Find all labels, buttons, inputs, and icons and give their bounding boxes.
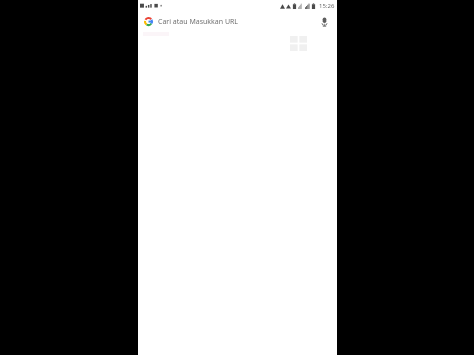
other: Shortcuts bbox=[290, 36, 307, 51]
staticText: Cari atau Masukkan URL bbox=[158, 17, 239, 27]
staticText: 15:26 bbox=[319, 2, 335, 10]
button[interactable]: Cari atau Masukkan URL bbox=[138, 11, 337, 32]
button[interactable]: Voice search bbox=[317, 15, 331, 29]
